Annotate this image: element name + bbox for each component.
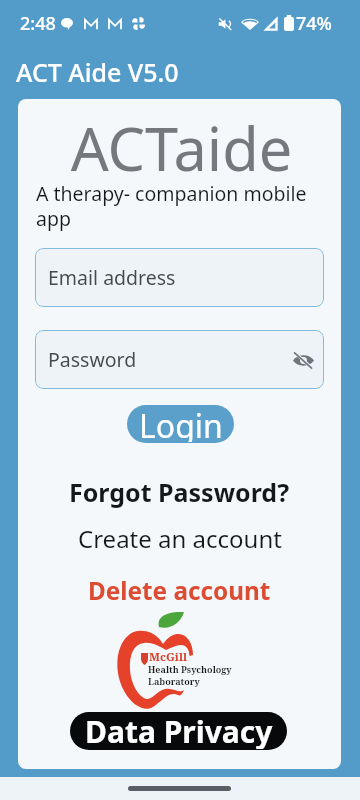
staticText: Email address: [48, 264, 176, 291]
button[interactable]: Show password: [291, 349, 315, 371]
staticText: McGill: [149, 649, 188, 665]
staticText: Laboratory: [148, 675, 200, 687]
button[interactable]: Forgot Password?: [18, 475, 341, 509]
staticText: 74%: [296, 11, 332, 36]
staticText: 2:48: [20, 11, 56, 36]
staticText: Create an account: [78, 522, 282, 555]
staticText: Delete account: [88, 574, 271, 607]
staticText: Password: [48, 346, 137, 373]
button[interactable]: Login: [127, 405, 234, 443]
button[interactable]: Data Privacy: [70, 712, 287, 750]
button[interactable]: Create an account: [18, 522, 341, 555]
staticText: Health Psychology: [148, 663, 232, 675]
staticText: Forgot Password?: [69, 475, 290, 509]
button[interactable]: Email address: [35, 248, 324, 307]
button[interactable]: Password: [35, 330, 324, 389]
staticText: Login: [139, 405, 223, 442]
staticText: A therapy- companion mobile app: [36, 180, 323, 231]
staticText: Data Privacy: [85, 712, 273, 749]
staticText: ACT Aide V5.0: [16, 55, 179, 89]
staticText: ACTaide: [20, 107, 341, 188]
button[interactable]: Delete account: [18, 574, 341, 607]
